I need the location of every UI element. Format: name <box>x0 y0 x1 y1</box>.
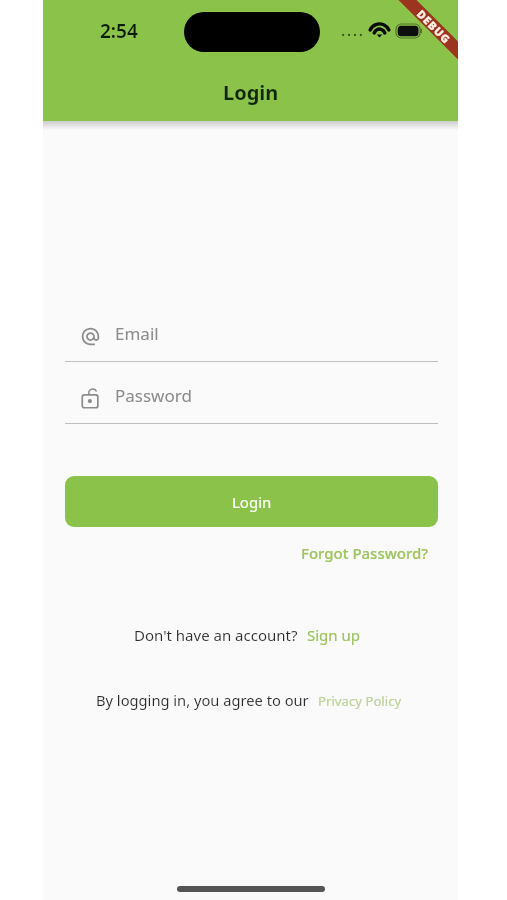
button[interactable]: Email <box>65 311 438 362</box>
staticText: DEBUG <box>414 6 454 47</box>
button[interactable]: Privacy Policy <box>318 692 402 710</box>
staticText: Password <box>115 384 192 407</box>
staticText: 2:54 <box>100 18 138 44</box>
staticText: Login <box>232 492 272 512</box>
staticText: Email <box>115 322 159 345</box>
staticText: Login <box>223 79 279 106</box>
button[interactable]: Password <box>65 373 438 424</box>
staticText: Forgot Password? <box>301 543 429 563</box>
button[interactable]: Forgot Password? <box>301 527 438 569</box>
staticText: Don't have an account? <box>134 625 298 645</box>
other: Email <box>80 326 101 347</box>
other: Password <box>80 388 101 409</box>
button[interactable]: Login <box>65 476 438 527</box>
button[interactable]: Sign up <box>307 625 360 645</box>
staticText: By logging in, you agree to our <box>96 690 309 710</box>
